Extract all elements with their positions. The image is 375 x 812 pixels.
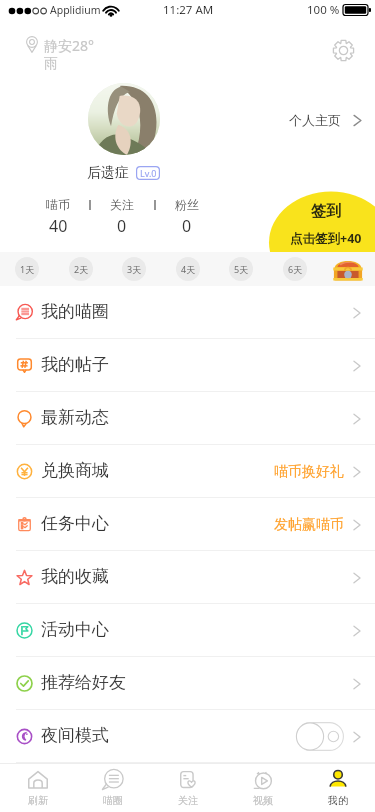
button[interactable]: 关注 [92,197,152,237]
button[interactable]: Night mode toggle [296,722,344,751]
staticText: 0 [117,215,127,237]
button[interactable]: 2天 [69,257,93,281]
staticText: 任务中心 [41,513,109,534]
staticText: 活动中心 [41,619,109,640]
button[interactable]: 夜间模式 [0,710,375,763]
button[interactable]: 1天 [15,257,39,281]
staticText: 5天 [234,263,249,275]
button[interactable]: 静安28° [26,36,95,73]
button[interactable]: 推荐给好友 [0,657,375,710]
staticText: 后遗症 [87,164,129,182]
button[interactable]: 活动中心 [0,604,375,657]
button[interactable]: 5天 [229,257,253,281]
staticText: 40 [49,215,68,237]
staticText: 2天 [74,263,89,275]
staticText: 100 % [307,2,340,18]
button[interactable]: Treasure chest [332,257,364,282]
staticText: 1天 [20,263,35,275]
button[interactable]: 6天 [283,257,307,281]
button[interactable]: 4天 [176,257,200,281]
staticText: 静安28° [44,36,95,55]
staticText: 最新动态 [41,407,109,428]
staticText: 3天 [127,263,142,275]
button[interactable]: 关注 [150,763,225,812]
button[interactable]: 兑换商城 [0,445,375,498]
staticText: 签到 [311,202,341,221]
button[interactable]: 我的收藏 [0,551,375,604]
staticText: 个人主页 [289,112,341,128]
button[interactable]: Settings [332,39,355,62]
button[interactable]: Avatar [88,83,160,155]
staticText: 0 [182,215,192,237]
staticText: 粉丝 [175,197,199,212]
staticText: 夜间模式 [41,725,109,746]
staticText: 点击签到+40 [290,230,362,247]
button[interactable]: 我的喵圈 [0,286,375,339]
staticText: 关注 [178,794,198,807]
button[interactable]: 喵圈 [75,763,150,812]
button[interactable]: 喵币 [28,197,88,237]
button[interactable]: 最新动态 [0,392,375,445]
staticText: 推荐给好友 [41,672,126,693]
button[interactable]: 粉丝 [157,197,217,237]
button[interactable]: 个人主页 [289,112,362,128]
staticText: 11:27 AM [163,2,214,18]
button[interactable]: 任务中心 [0,498,375,551]
staticText: 4天 [181,263,196,275]
button[interactable]: 签到 [273,193,375,252]
staticText: 喵币 [46,197,70,212]
staticText: 我的喵圈 [41,301,109,322]
staticText: 我的帖子 [41,354,109,375]
staticText: Applidium [50,3,101,17]
staticText: Lv.0 [140,167,157,179]
staticText: 刷新 [28,794,48,807]
staticText: 关注 [110,197,134,212]
button[interactable]: 3天 [122,257,146,281]
staticText: 兑换商城 [41,460,109,481]
staticText: 喵圈 [103,794,123,807]
staticText: 雨 [44,55,58,73]
staticText: 发帖赢喵币 [274,516,344,534]
staticText: 喵币换好礼 [274,463,344,481]
staticText: 我的 [328,794,348,807]
button[interactable]: 我的帖子 [0,339,375,392]
staticText: 视频 [253,794,273,807]
staticText: 我的收藏 [41,566,109,587]
button[interactable]: 我的 [300,763,375,812]
staticText: 6天 [288,263,303,275]
button[interactable]: 视频 [225,763,300,812]
button[interactable]: 刷新 [0,763,75,812]
